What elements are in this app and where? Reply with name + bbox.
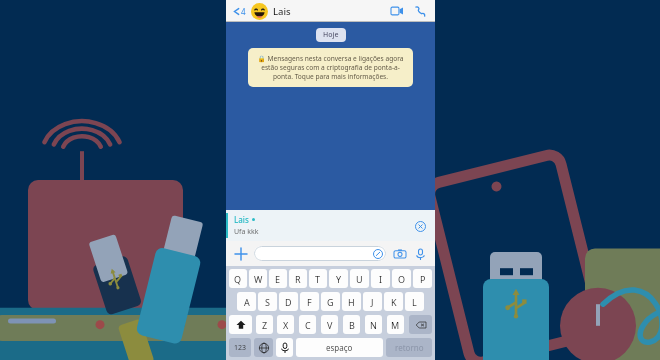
button[interactable]: Change keyboard [254, 338, 273, 357]
button[interactable]: Shift [229, 315, 252, 334]
button[interactable]: R [289, 269, 307, 288]
button[interactable]: Backspace [409, 315, 432, 334]
button[interactable]: G [321, 292, 340, 311]
button[interactable]: O [392, 269, 411, 288]
staticText: I [379, 273, 383, 285]
staticText: D [285, 296, 292, 308]
button[interactable]: X [277, 315, 294, 334]
button[interactable]: S [258, 292, 277, 311]
button[interactable]: M [387, 315, 404, 334]
staticText: B [349, 319, 355, 331]
staticText: Ufa kkk [234, 227, 259, 237]
staticText: A [244, 296, 250, 308]
button[interactable]: W [249, 269, 267, 288]
staticText: F [307, 296, 312, 308]
button[interactable]: T [309, 269, 327, 288]
button[interactable]: K [384, 292, 403, 311]
button[interactable]: retorno [386, 338, 432, 357]
button[interactable]: 123 [229, 338, 251, 357]
button[interactable]: Voice message [411, 245, 429, 263]
button[interactable]: Camera [391, 245, 409, 263]
staticText: N [370, 319, 377, 331]
button[interactable]: espaço [296, 338, 383, 357]
staticText: K [391, 296, 397, 308]
button[interactable]: 🔒 Mensagens nesta conversa e ligações ag… [248, 48, 413, 87]
staticText: E [275, 273, 281, 285]
staticText: retorno [395, 342, 424, 353]
button[interactable]: Attach [232, 245, 250, 263]
staticText: X [283, 319, 289, 331]
staticText: Q [234, 273, 242, 285]
button[interactable]: V [321, 315, 338, 334]
staticText: G [327, 296, 334, 308]
staticText: V [327, 319, 333, 331]
staticText: W [254, 273, 263, 285]
staticText: 123 [234, 343, 247, 353]
button[interactable]: I [371, 269, 390, 288]
staticText: M [391, 319, 400, 331]
button[interactable]: Y [329, 269, 348, 288]
button[interactable]: Back, 4 unread [230, 4, 248, 19]
button[interactable]: D [279, 292, 298, 311]
staticText: R [295, 273, 301, 285]
staticText: espaço [326, 342, 353, 353]
staticText: Z [262, 319, 268, 331]
button[interactable]: E [269, 269, 287, 288]
staticText: Lais [234, 214, 249, 225]
button[interactable]: Cancel reply [409, 215, 431, 237]
staticText: 🔒 Mensagens nesta conversa e ligações ag… [256, 54, 405, 81]
button[interactable]: H [342, 292, 361, 311]
button[interactable]: A [237, 292, 256, 311]
button[interactable] [254, 246, 386, 261]
button[interactable]: N [365, 315, 382, 334]
staticText: S [265, 296, 270, 308]
button[interactable]: Q [229, 269, 247, 288]
button[interactable]: J [363, 292, 382, 311]
staticText: L [412, 296, 417, 308]
staticText: H [348, 296, 355, 308]
staticText: T [315, 273, 321, 285]
button[interactable]: Z [256, 315, 273, 334]
staticText: Y [336, 273, 342, 285]
button[interactable]: Voice call [411, 2, 429, 20]
staticText: U [356, 273, 363, 285]
staticText: C [305, 319, 311, 331]
staticText: O [398, 273, 406, 285]
button[interactable]: B [343, 315, 360, 334]
button[interactable]: P [413, 269, 432, 288]
button[interactable]: C [299, 315, 316, 334]
staticText: Hoje [323, 30, 339, 40]
staticText: P [420, 273, 426, 285]
button[interactable]: Hoje [323, 30, 339, 40]
button[interactable]: Video call [388, 2, 406, 20]
button[interactable]: U [350, 269, 369, 288]
button[interactable]: Dictation [276, 338, 293, 357]
staticText: J [371, 296, 374, 308]
button[interactable]: L [405, 292, 424, 311]
staticText: 4 [241, 6, 246, 17]
staticText: Lais [273, 5, 291, 18]
button[interactable]: F [300, 292, 319, 311]
